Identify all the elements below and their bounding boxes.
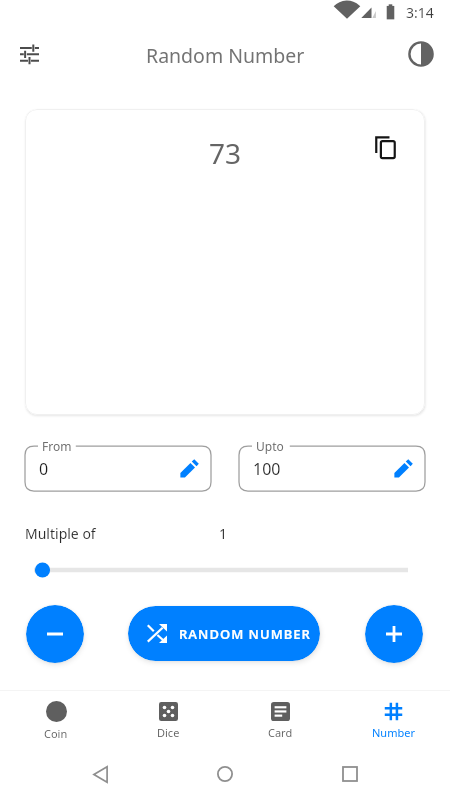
staticText: Card — [268, 725, 293, 740]
button[interactable]: Increase — [365, 605, 423, 663]
staticText: Dice — [157, 725, 180, 740]
staticText: Coin — [44, 726, 68, 741]
button[interactable]: Recents — [328, 752, 372, 796]
staticText: Random Number — [146, 42, 305, 69]
staticText: 0 — [39, 458, 49, 480]
staticText: 1 — [219, 524, 228, 543]
button[interactable]: Number — [337, 691, 450, 750]
button[interactable]: Coin — [0, 691, 112, 750]
button[interactable]: Card — [224, 691, 337, 750]
staticText: From — [42, 438, 72, 454]
staticText: 73 — [209, 134, 242, 172]
button[interactable]: Toggle dark mode — [397, 30, 445, 78]
button[interactable]: Back — [78, 752, 122, 796]
button[interactable]: Copy — [365, 127, 405, 167]
button[interactable]: Decrease — [26, 605, 84, 663]
button[interactable]: Home — [203, 752, 247, 796]
button[interactable]: Dice — [112, 691, 224, 750]
staticText: RANDOM NUMBER — [179, 625, 311, 643]
staticText: Multiple of — [25, 524, 96, 543]
staticText: 100 — [253, 458, 281, 480]
staticText: 3:14 — [406, 3, 434, 22]
button[interactable]: Edit Upto — [386, 451, 420, 485]
staticText: Number — [372, 725, 415, 740]
button[interactable]: Settings — [5, 30, 53, 78]
button[interactable]: RANDOM NUMBER — [128, 606, 320, 661]
staticText: Upto — [256, 438, 284, 454]
button[interactable]: Edit From — [172, 451, 206, 485]
button[interactable]: Multiple slider — [25, 556, 410, 584]
